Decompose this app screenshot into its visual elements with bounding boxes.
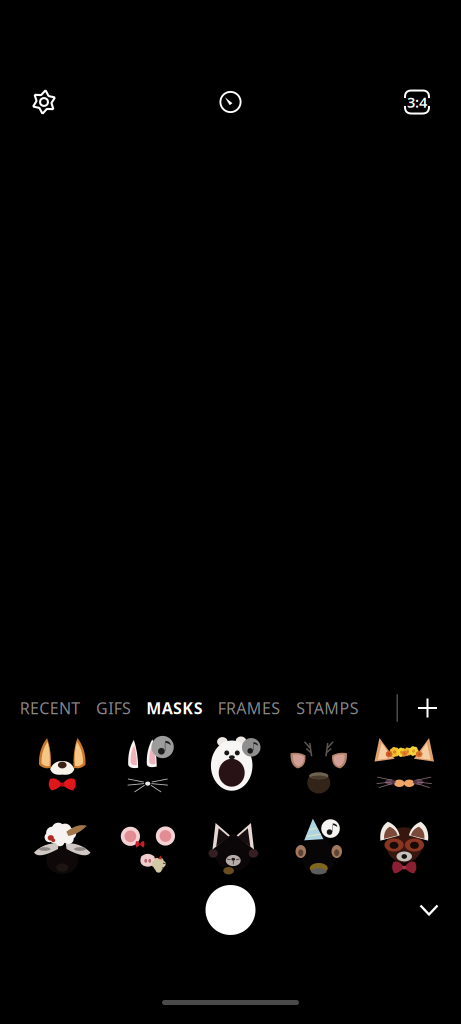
staticText: MASKS — [146, 697, 203, 719]
button[interactable]: RECENT — [12, 690, 88, 726]
button[interactable]: Settings — [22, 80, 66, 124]
button[interactable]: Panda mask, selected — [188, 725, 273, 801]
button[interactable]: Timer — [208, 80, 252, 124]
button[interactable]: Collapse mask panel — [408, 890, 450, 930]
button[interactable]: Take photo — [205, 885, 255, 935]
button[interactable]: Cat mask — [188, 805, 273, 881]
button[interactable]: Lamb mask — [17, 805, 102, 881]
staticText: RECENT — [20, 697, 80, 719]
button[interactable]: Deer mask — [273, 725, 359, 801]
button[interactable]: GIFS — [88, 690, 139, 726]
button[interactable]: Aspect ratio 3 to 4 — [395, 80, 439, 124]
button[interactable]: STAMPS — [288, 690, 367, 726]
button[interactable]: Dog mask — [17, 725, 102, 801]
button[interactable]: MASKS — [139, 690, 210, 726]
staticText: STAMPS — [296, 697, 359, 719]
button[interactable]: FRAMES — [210, 690, 288, 726]
button[interactable]: Add mask — [398, 690, 457, 726]
staticText: GIFS — [96, 697, 131, 719]
button[interactable]: Party bear mask — [273, 805, 359, 881]
button[interactable]: Flower cat mask — [359, 725, 444, 801]
button[interactable]: Red panda mask — [359, 805, 444, 881]
button[interactable]: Pig mask — [102, 805, 188, 881]
staticText: FRAMES — [218, 697, 280, 719]
button[interactable]: Rabbit mask — [102, 725, 188, 801]
staticText: 3:4 — [407, 92, 427, 112]
